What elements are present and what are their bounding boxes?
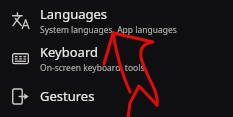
button[interactable]: Gestures bbox=[0, 77, 233, 115]
other: Keyboard bbox=[9, 47, 31, 69]
staticText: Keyboard bbox=[40, 43, 99, 61]
staticText: Languages bbox=[40, 5, 108, 23]
button[interactable]: Keyboard bbox=[0, 39, 233, 77]
staticText: On-screen keyboard, tools bbox=[40, 62, 145, 74]
staticText: System languages, App languages bbox=[40, 24, 177, 36]
other: Gestures bbox=[9, 85, 31, 107]
button[interactable]: Languages bbox=[0, 1, 233, 39]
other: Languages bbox=[9, 9, 31, 31]
staticText: Gestures bbox=[40, 87, 95, 105]
